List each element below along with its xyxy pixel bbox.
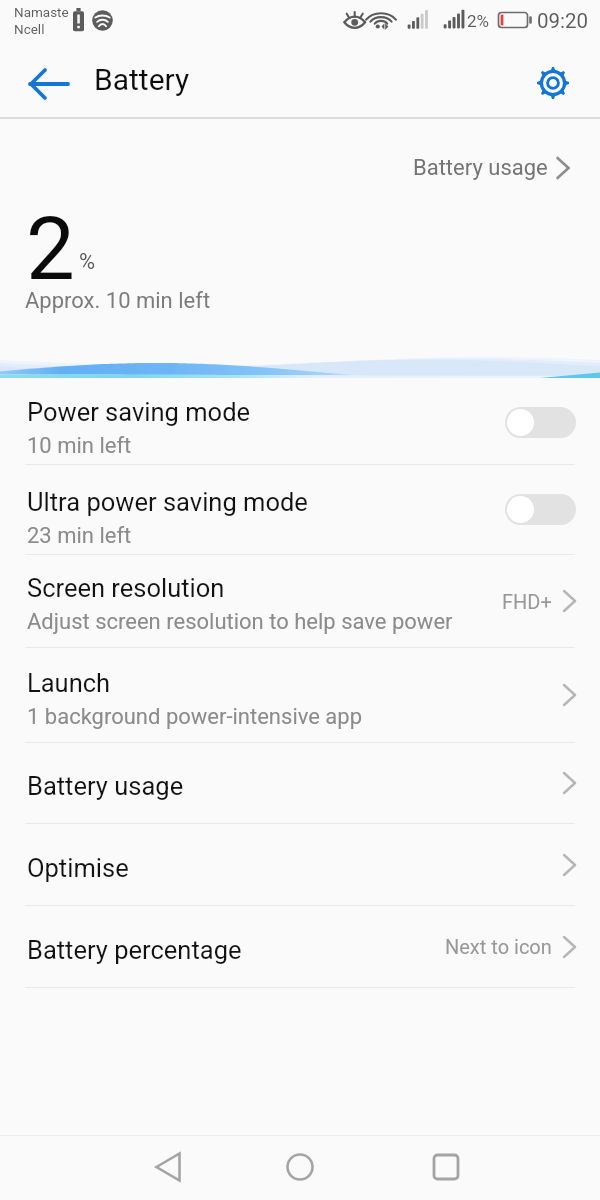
- staticText: 23 min left: [27, 523, 132, 549]
- button[interactable]: Recents: [414, 1136, 478, 1200]
- staticText: Approx. 10 min left: [25, 288, 211, 314]
- staticText: Optimise: [27, 853, 129, 883]
- staticText: Battery percentage: [27, 935, 242, 965]
- staticText: Battery usage: [413, 155, 548, 181]
- button[interactable]: Battery usage: [0, 743, 600, 823]
- button[interactable]: Power saving mode: [0, 380, 600, 464]
- staticText: 2%: [467, 11, 490, 31]
- staticText: 10 min left: [27, 433, 132, 459]
- button[interactable]: Home: [268, 1136, 332, 1200]
- button[interactable]: Screen resolution: [0, 555, 600, 647]
- button[interactable]: Launch: [0, 648, 600, 742]
- staticText: Ncell: [14, 21, 45, 37]
- staticText: 2: [26, 198, 75, 300]
- button[interactable]: Power saving mode: [505, 407, 576, 438]
- staticText: 1 background power-intensive app: [27, 704, 363, 730]
- button[interactable]: Ultra power saving mode: [0, 465, 600, 554]
- button[interactable]: Settings: [528, 58, 578, 108]
- staticText: Namaste: [14, 4, 69, 20]
- staticText: %: [79, 249, 96, 275]
- button[interactable]: Battery usage: [406, 150, 578, 186]
- button[interactable]: Battery percentage: [0, 906, 600, 987]
- staticText: Adjust screen resolution to help save po…: [27, 609, 453, 635]
- staticText: Battery usage: [27, 771, 184, 801]
- staticText: Ultra power saving mode: [27, 487, 308, 517]
- staticText: Launch: [27, 668, 111, 698]
- staticText: Next to icon: [445, 935, 552, 958]
- button[interactable]: Back: [136, 1136, 200, 1200]
- staticText: Power saving mode: [27, 397, 251, 427]
- staticText: 09:20: [537, 9, 589, 33]
- button[interactable]: Back: [22, 56, 76, 110]
- button[interactable]: Ultra power saving mode: [505, 494, 576, 525]
- staticText: FHD+: [502, 590, 552, 613]
- staticText: Battery: [94, 62, 190, 97]
- staticText: Screen resolution: [27, 573, 225, 603]
- button[interactable]: Optimise: [0, 824, 600, 905]
